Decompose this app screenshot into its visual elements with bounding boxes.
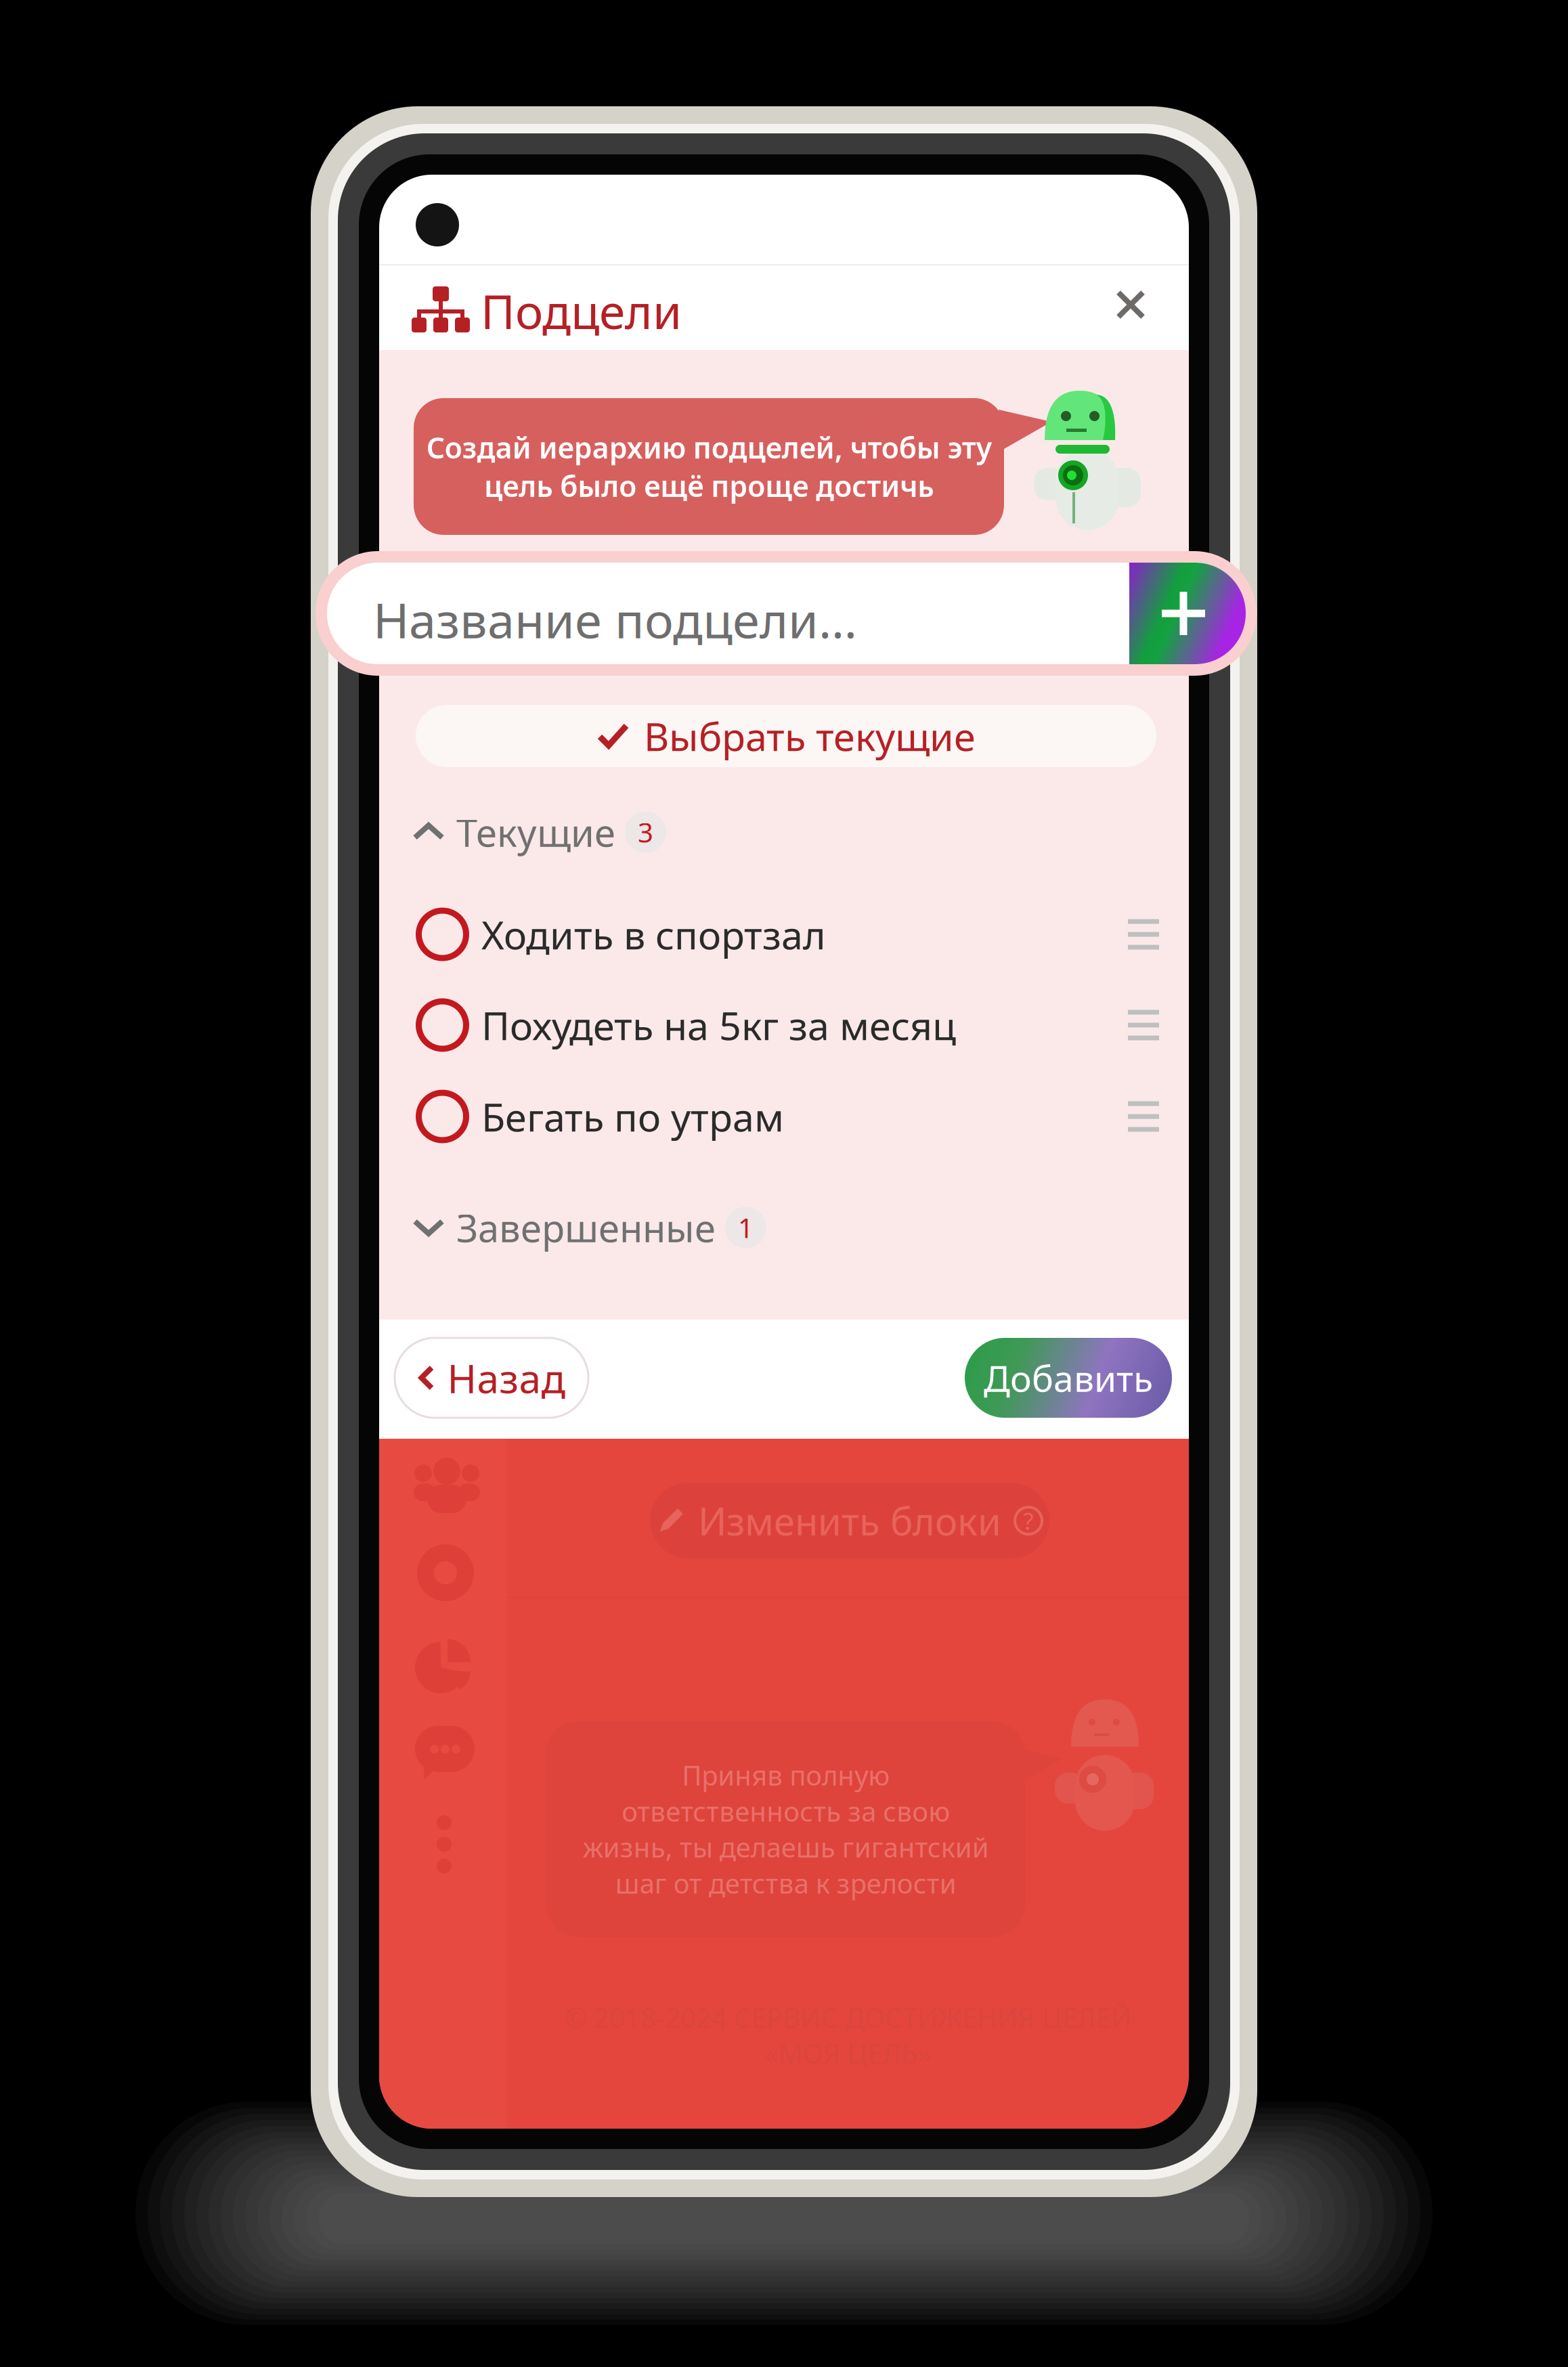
staticText: Ходить в спортзал [481, 909, 826, 960]
button[interactable]: Бегать по утрам [379, 1071, 1189, 1162]
button[interactable]: Закрыть [1098, 274, 1163, 339]
button[interactable]: Текущие [413, 808, 1090, 856]
staticText: Название подцели… [373, 587, 857, 652]
staticText: Бегать по утрам [481, 1091, 784, 1142]
staticText: 3 [638, 814, 653, 850]
staticText: Добавить [984, 1354, 1153, 1402]
staticText: Подцели [481, 280, 682, 342]
staticText: Похудеть на 5кг за месяц [481, 999, 956, 1051]
staticText: Изменить блоки [698, 1495, 1001, 1546]
staticText: Выбрать текущие [644, 710, 976, 762]
staticText: Создай иерархию подцелей, чтобы эту цель… [426, 428, 992, 505]
button[interactable]: Выбрать текущие [416, 705, 1156, 767]
staticText: 1 [738, 1209, 754, 1245]
staticText: ? [1023, 1505, 1033, 1536]
button[interactable]: Назад [395, 1338, 588, 1418]
button[interactable]: Завершенные [413, 1203, 1090, 1252]
staticText: Приняв полную ответственность за свою жи… [583, 1757, 989, 1901]
staticText: Назад [447, 1351, 566, 1404]
button[interactable]: Ходить в спортзал [379, 889, 1189, 980]
staticText: Завершенные [456, 1202, 716, 1253]
button[interactable]: Добавить подцель [1129, 563, 1246, 664]
staticText: Текущие [456, 807, 615, 857]
button[interactable]: Добавить [965, 1338, 1172, 1418]
button[interactable]: Похудеть на 5кг за месяц [379, 980, 1189, 1070]
